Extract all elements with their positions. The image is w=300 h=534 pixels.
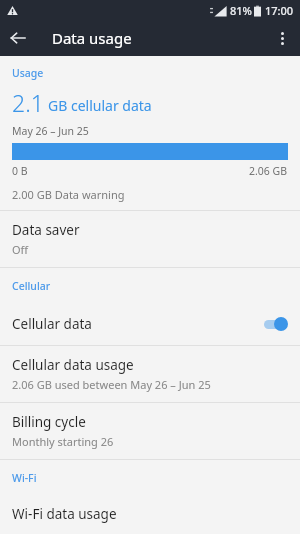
staticText: Cellular <box>12 279 51 293</box>
button[interactable]: Cellular data usage <box>0 346 300 402</box>
staticText: Off <box>12 242 29 257</box>
staticText: Monthly starting 26 <box>12 434 114 449</box>
staticText: Data usage <box>52 28 132 48</box>
staticText: Data saver <box>12 221 80 239</box>
staticText: Wi-Fi <box>12 471 37 485</box>
staticText: Cellular data <box>12 315 92 333</box>
staticText: 0 B <box>12 164 28 178</box>
staticText: Billing cycle <box>12 413 86 431</box>
staticText: May 26 – Jun 25 <box>12 124 89 138</box>
staticText: Usage <box>12 66 44 80</box>
staticText: 17:00 <box>265 3 294 18</box>
button[interactable]: Billing cycle <box>0 403 300 459</box>
staticText: 2.06 GB <box>249 164 288 178</box>
button[interactable]: More options <box>264 20 300 56</box>
button[interactable]: Cellular data <box>0 303 300 345</box>
button[interactable]: Back <box>0 20 36 56</box>
button[interactable]: Data saver <box>0 211 300 267</box>
button[interactable]: Usage <box>0 56 300 210</box>
staticText: 2.06 GB used between May 26 – Jun 25 <box>12 377 211 392</box>
staticText: Cellular data usage <box>12 356 134 374</box>
staticText: Wi-Fi data usage <box>12 505 117 523</box>
staticText: GB cellular data <box>48 96 152 115</box>
button[interactable]: Wi-Fi data usage <box>0 495 300 534</box>
staticText: 2.00 GB Data warning <box>12 187 125 202</box>
staticText: 81% <box>230 3 252 18</box>
staticText: 2.1 <box>12 87 44 118</box>
